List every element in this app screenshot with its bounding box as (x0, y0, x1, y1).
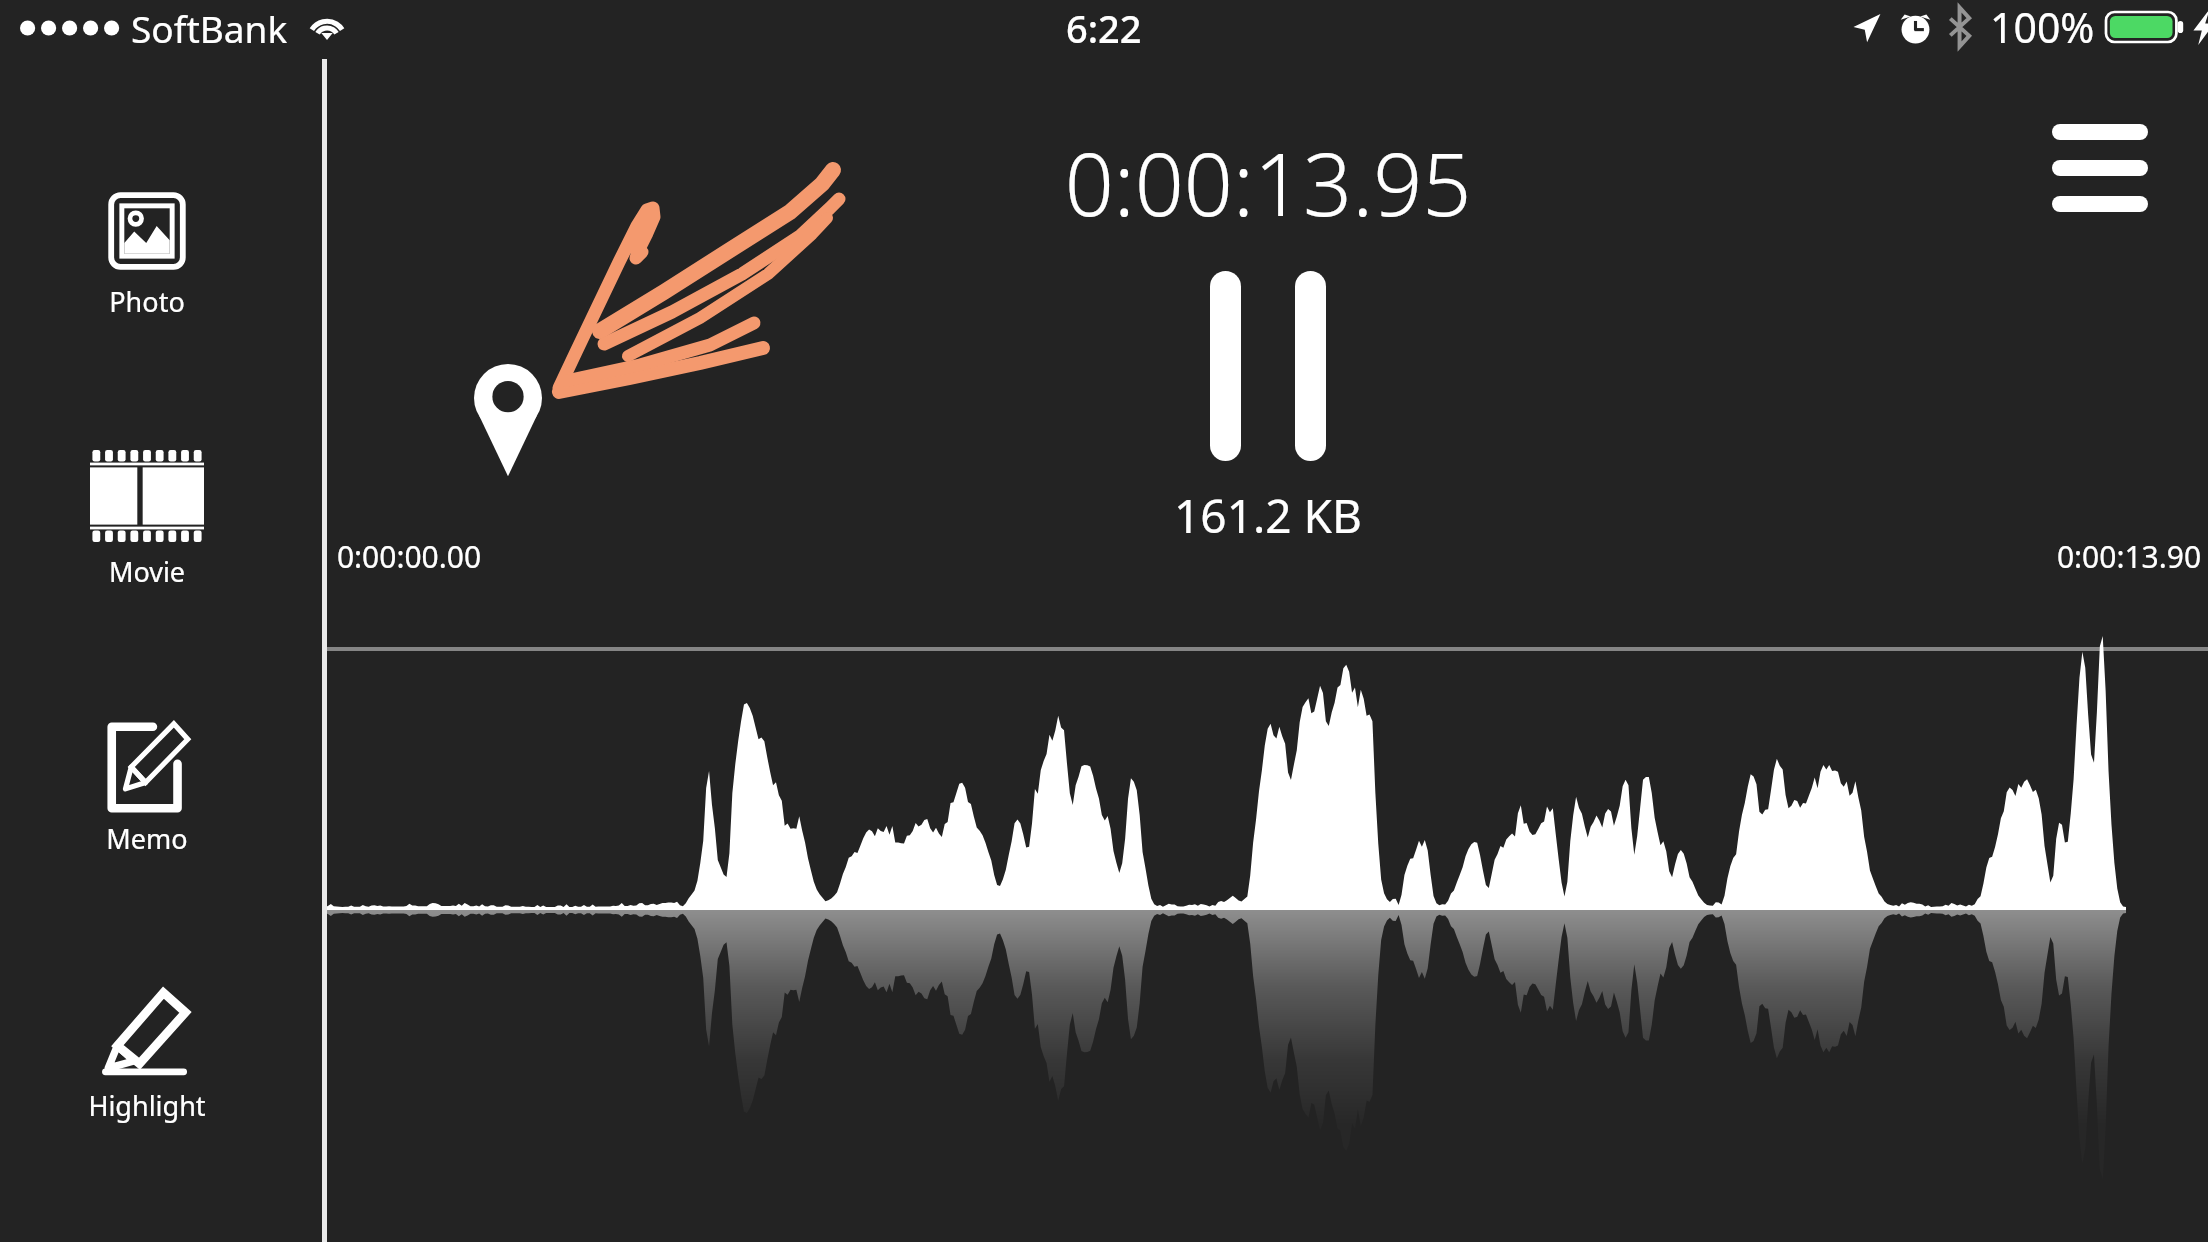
staticText: Photo (0, 283, 294, 320)
staticText: Highlight (0, 1087, 294, 1124)
button[interactable]: Photo (0, 162, 300, 343)
staticText: 0:00:00.00 (309, 536, 509, 577)
staticText: 100% (1990, 0, 2095, 55)
button[interactable]: Highlight (0, 965, 300, 1147)
staticText: Movie (0, 553, 294, 590)
button[interactable]: Memo (0, 698, 300, 880)
staticText: SoftBank (131, 3, 288, 53)
staticText: 6:22 (1066, 2, 1142, 54)
button[interactable]: Waveform timeline (325, 650, 2208, 1242)
button[interactable]: Menu (2032, 104, 2168, 232)
button[interactable]: Movie (0, 426, 300, 613)
staticText: 0:00:13.90 (2029, 536, 2208, 577)
staticText: Memo (0, 820, 294, 857)
staticText: 0:00:13.95 (1018, 124, 1518, 241)
button[interactable]: Pause (1210, 271, 1326, 461)
staticText: 161.2 KB (1118, 484, 1418, 547)
